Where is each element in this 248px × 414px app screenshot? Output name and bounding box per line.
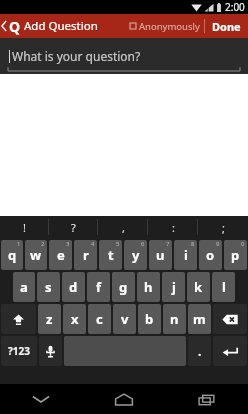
staticText: Done <box>212 19 241 34</box>
button[interactable]: d <box>62 272 85 302</box>
button[interactable]: o <box>199 240 222 270</box>
staticText: 0 <box>241 240 245 248</box>
staticText: 3 <box>66 240 70 248</box>
staticText: , <box>122 220 125 235</box>
staticText: k <box>194 278 203 296</box>
button[interactable]: s <box>37 272 60 302</box>
button[interactable]: . <box>188 336 211 366</box>
staticText: e <box>57 246 65 264</box>
staticText: : <box>172 220 175 235</box>
staticText: Anonymously <box>139 20 200 33</box>
button[interactable]: Voice input <box>39 336 62 366</box>
button[interactable]: z <box>38 304 61 334</box>
button[interactable]: c <box>88 304 111 334</box>
staticText: m <box>193 310 206 328</box>
staticText: y <box>132 246 140 264</box>
button[interactable]: w <box>25 240 47 270</box>
staticText: j <box>172 278 176 296</box>
button[interactable]: , <box>98 216 148 238</box>
button[interactable]: Anonymously <box>126 14 204 38</box>
staticText: 7 <box>166 240 170 248</box>
staticText: Q <box>9 17 21 36</box>
staticText: d <box>69 278 78 296</box>
staticText: z <box>46 310 53 328</box>
button[interactable]: l <box>212 272 235 302</box>
button[interactable]: x <box>63 304 86 334</box>
button[interactable]: ?123 <box>1 336 37 366</box>
button[interactable]: Done <box>205 14 248 38</box>
staticText: i <box>184 246 188 264</box>
staticText: q <box>8 246 17 264</box>
staticText: ?123 <box>8 344 30 358</box>
staticText: What is your question? <box>12 48 141 64</box>
button[interactable]: p <box>224 240 247 270</box>
staticText: u <box>156 246 165 264</box>
staticText: Add Question <box>24 18 98 34</box>
button[interactable]: v <box>113 304 136 334</box>
staticText: l <box>222 278 226 296</box>
button[interactable]: g <box>112 272 135 302</box>
button[interactable]: u <box>149 240 172 270</box>
button[interactable]: a <box>13 272 35 302</box>
staticText: p <box>231 246 240 264</box>
staticText: b <box>145 310 154 328</box>
button[interactable]: b <box>138 304 161 334</box>
button[interactable]: Home <box>82 384 165 414</box>
staticText: ? <box>71 220 76 235</box>
staticText: 9 <box>216 240 220 248</box>
staticText: 8 <box>191 240 195 248</box>
staticText: 1 <box>17 240 21 248</box>
staticText: ; <box>222 220 225 235</box>
staticText: a <box>20 278 28 296</box>
button[interactable]: r <box>74 240 97 270</box>
button[interactable]: What is your question? <box>0 38 248 74</box>
staticText: 4 <box>91 240 95 248</box>
staticText: g <box>119 278 128 296</box>
button[interactable]: Recent apps <box>165 384 248 414</box>
button[interactable]: ? <box>49 216 98 238</box>
staticText: o <box>206 246 215 264</box>
button[interactable]: ! <box>0 216 49 238</box>
button[interactable]: Hide keyboard <box>0 384 82 414</box>
button[interactable]: t <box>99 240 122 270</box>
staticText: 5 <box>116 240 120 248</box>
staticText: . <box>198 343 202 359</box>
button[interactable]: ; <box>198 216 248 238</box>
staticText: ! <box>23 220 26 235</box>
staticText: h <box>144 278 153 296</box>
staticText: s <box>45 278 52 296</box>
staticText: r <box>83 246 89 264</box>
button[interactable]: q <box>1 240 23 270</box>
staticText: f <box>96 278 102 296</box>
button[interactable]: Delete <box>213 304 247 334</box>
button[interactable]: Navigate up <box>0 14 24 38</box>
button[interactable]: n <box>163 304 186 334</box>
staticText: 2 <box>41 240 45 248</box>
staticText: v <box>121 310 129 328</box>
button[interactable]: f <box>87 272 110 302</box>
staticText: 6 <box>141 240 145 248</box>
button[interactable]: e <box>49 240 72 270</box>
staticText: n <box>170 310 179 328</box>
button[interactable]: Shift <box>1 304 36 334</box>
button[interactable]: j <box>162 272 185 302</box>
staticText: t <box>108 246 114 264</box>
staticText: w <box>30 246 42 264</box>
button[interactable]: h <box>137 272 160 302</box>
staticText: c <box>96 310 103 328</box>
button[interactable]: m <box>188 304 211 334</box>
staticText: x <box>71 310 79 328</box>
staticText: 2:00 <box>225 0 245 14</box>
button[interactable]: : <box>148 216 198 238</box>
button[interactable]: Enter <box>213 336 247 366</box>
button[interactable]: k <box>187 272 210 302</box>
button[interactable]: y <box>124 240 147 270</box>
button[interactable]: i <box>174 240 197 270</box>
